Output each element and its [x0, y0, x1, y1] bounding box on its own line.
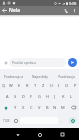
staticText: C	[30, 105, 33, 110]
button[interactable]: M	[59, 102, 67, 113]
button[interactable]: U	[47, 80, 55, 91]
button[interactable]: .	[58, 117, 66, 124]
button[interactable]: H	[43, 91, 51, 102]
staticText: Naposledy zobrazeno	[27, 75, 53, 79]
button[interactable]: Pozdravuju	[53, 69, 79, 80]
staticText: E	[18, 83, 21, 88]
button[interactable]: Shift	[0, 102, 11, 113]
button[interactable]: P	[71, 80, 79, 91]
button[interactable]: Send	[68, 58, 77, 67]
button[interactable]: Back	[12, 129, 23, 140]
staticText: Pozdravuju	[58, 75, 75, 79]
button[interactable]: A	[3, 91, 11, 102]
staticText: P	[74, 83, 77, 88]
staticText: M	[61, 105, 65, 110]
staticText: G	[38, 94, 41, 99]
button[interactable]: Q	[0, 80, 7, 91]
button[interactable]: Emoji	[12, 117, 20, 124]
staticText: .	[61, 118, 63, 123]
staticText: J	[54, 94, 56, 99]
button[interactable]: Recent apps	[57, 129, 68, 140]
button[interactable]: C	[27, 102, 35, 113]
button[interactable]: Poslat zprávu	[9, 58, 66, 67]
button[interactable]: T	[31, 80, 39, 91]
button[interactable]: Z	[39, 80, 47, 91]
staticText: F	[30, 94, 33, 99]
button[interactable]: Backspace	[67, 102, 79, 113]
button[interactable]: Add	[2, 59, 9, 66]
staticText: Poslat zprávu	[12, 60, 36, 65]
staticText: N	[53, 105, 57, 110]
staticText: K	[62, 94, 65, 99]
button[interactable]: J	[51, 91, 59, 102]
staticText: I	[58, 83, 60, 88]
button[interactable]: K	[59, 91, 67, 102]
staticText: X	[22, 105, 25, 110]
staticText: Q	[2, 83, 6, 88]
button[interactable]: ?123	[0, 117, 12, 124]
button[interactable]: G	[35, 91, 43, 102]
staticText: 9:05	[69, 1, 77, 6]
staticText: S	[14, 94, 17, 99]
staticText: Pozdravuju a zajímá	[0, 75, 27, 79]
button[interactable]: V	[35, 102, 43, 113]
button[interactable]: R	[23, 80, 31, 91]
button[interactable]: O	[63, 80, 71, 91]
staticText: U	[50, 83, 53, 88]
staticText: W	[9, 83, 13, 88]
button[interactable]: I	[55, 80, 63, 91]
staticText: ?123	[3, 119, 10, 123]
button[interactable]: D	[19, 91, 27, 102]
button[interactable]: Back	[0, 6, 9, 15]
staticText: Nela	[9, 7, 20, 14]
staticText: L	[70, 94, 73, 99]
button[interactable]: More options	[71, 7, 78, 14]
staticText: V	[38, 105, 41, 110]
button[interactable]: B	[43, 102, 51, 113]
button[interactable]: N	[51, 102, 59, 113]
button[interactable]: X	[19, 102, 27, 113]
button[interactable]: Pozdravuju a zajímá	[0, 69, 27, 80]
staticText: O	[65, 83, 69, 88]
button[interactable]: W	[7, 80, 15, 91]
button[interactable]: Home	[34, 129, 45, 140]
button[interactable]: F	[27, 91, 35, 102]
staticText: H	[46, 94, 49, 99]
button[interactable]: Enter	[66, 117, 79, 124]
button[interactable]: Naposledy zobrazeno	[27, 69, 53, 80]
button[interactable]: E	[15, 80, 23, 91]
button[interactable]: Call	[61, 6, 70, 15]
staticText: D	[22, 94, 25, 99]
staticText: Y	[14, 105, 17, 110]
staticText: A	[6, 94, 9, 99]
staticText: R	[26, 83, 29, 88]
staticText: T	[34, 83, 37, 88]
staticText: Z	[42, 83, 45, 88]
button[interactable]: Y	[11, 102, 19, 113]
staticText: B	[46, 105, 49, 110]
button[interactable]: S	[11, 91, 19, 102]
button[interactable]: L	[67, 91, 75, 102]
